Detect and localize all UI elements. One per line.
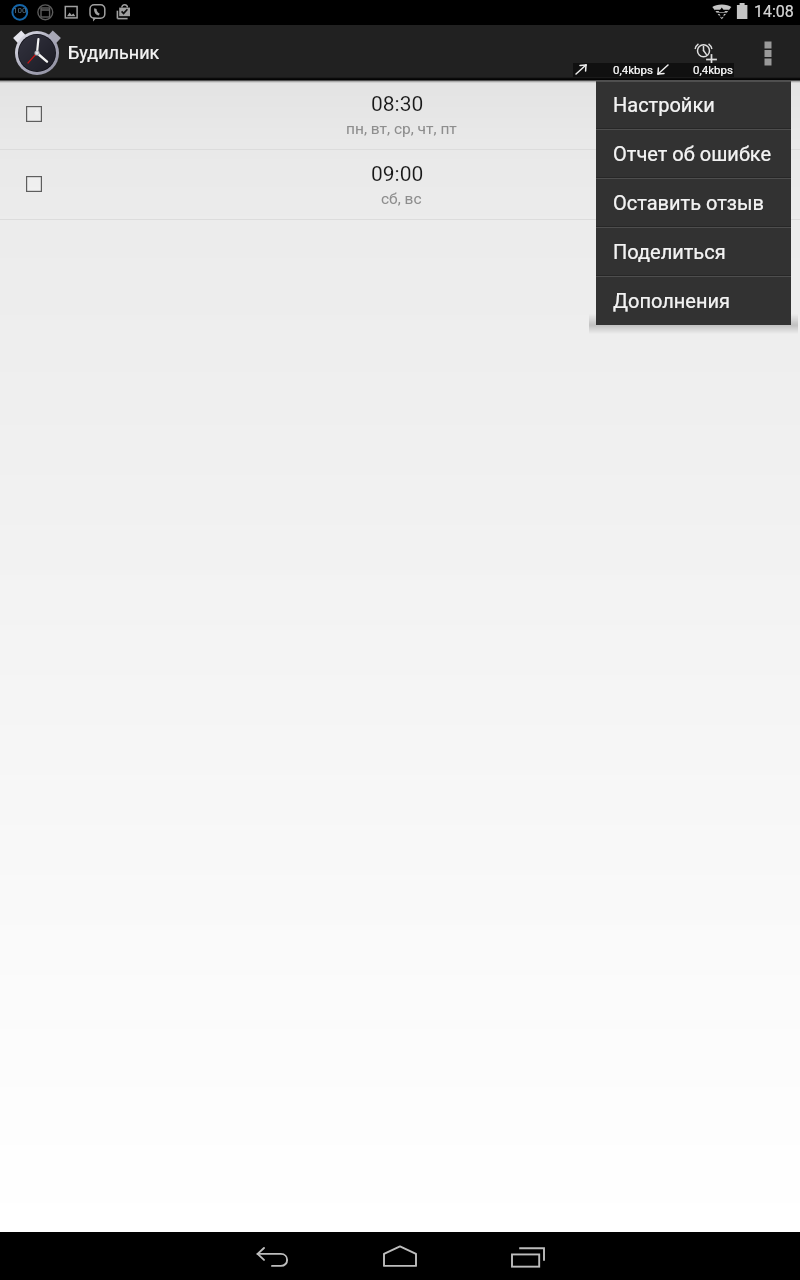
button[interactable]: Back bbox=[242, 1232, 302, 1280]
button[interactable]: 09:00 bbox=[0, 150, 800, 219]
staticText: 09:00 bbox=[371, 162, 424, 187]
staticText: Оставить отзыв bbox=[613, 191, 764, 214]
staticText: 08:30 bbox=[371, 92, 424, 117]
button[interactable]: Поделиться bbox=[596, 228, 791, 275]
staticText: сб, вс bbox=[381, 190, 422, 208]
staticText: Отчет об ошибке bbox=[613, 142, 772, 165]
staticText: 0,4kbps bbox=[693, 63, 733, 76]
button[interactable]: 08:30 bbox=[0, 80, 800, 149]
button[interactable]: Дополнения bbox=[596, 277, 791, 324]
button[interactable]: Add alarm bbox=[678, 25, 730, 80]
staticText: 0,4kbps bbox=[613, 63, 653, 76]
staticText: Поделиться bbox=[613, 240, 726, 263]
button[interactable]: More options bbox=[745, 25, 790, 80]
button[interactable]: Recents bbox=[498, 1232, 558, 1280]
button[interactable]: Отчет об ошибке bbox=[596, 130, 791, 177]
staticText: Настройки bbox=[613, 93, 715, 116]
staticText: 14:08 bbox=[754, 2, 794, 21]
button[interactable]: Настройки bbox=[596, 81, 791, 128]
button[interactable]: Home bbox=[370, 1232, 430, 1280]
staticText: Дополнения bbox=[613, 289, 730, 312]
staticText: пн, вт, ср, чт, пт bbox=[346, 120, 457, 138]
staticText: 100 bbox=[13, 6, 27, 15]
staticText: Будильник bbox=[68, 42, 160, 63]
button[interactable]: Оставить отзыв bbox=[596, 179, 791, 226]
